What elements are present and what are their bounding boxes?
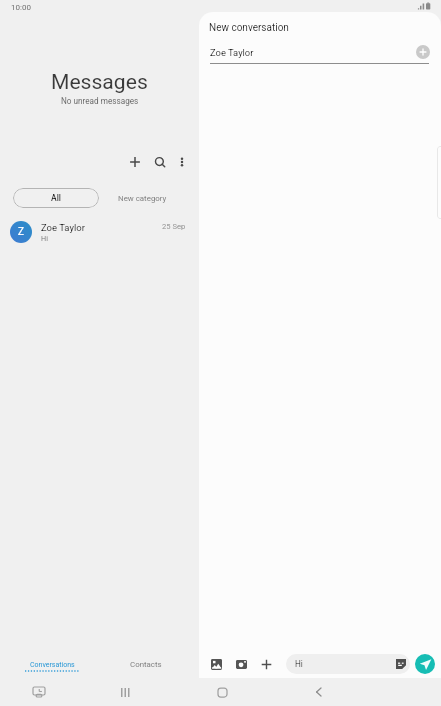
button[interactable]: More options [257, 655, 275, 673]
button[interactable]: More options [170, 150, 193, 173]
staticText: 25 Sep [162, 222, 186, 231]
staticText: 10:00 [11, 3, 31, 12]
button[interactable]: Send [415, 654, 435, 674]
button[interactable]: Hi [286, 654, 410, 674]
button[interactable]: Home [207, 678, 237, 706]
staticText: Hi [41, 234, 48, 242]
button[interactable]: Gallery [207, 655, 225, 673]
button[interactable]: New conversation [123, 150, 146, 173]
button[interactable]: Edge panel [437, 146, 441, 219]
staticText: New category [118, 194, 167, 203]
button[interactable]: Search [148, 150, 171, 173]
staticText: Hi [295, 659, 396, 669]
staticText: All [51, 193, 61, 203]
button[interactable]: All [13, 188, 99, 208]
button[interactable]: Z [0, 214, 199, 249]
staticText: Z [18, 226, 24, 238]
button[interactable]: Recent apps [110, 678, 140, 706]
button[interactable]: Conversations [12, 661, 93, 683]
button[interactable]: Back [303, 678, 333, 706]
button[interactable]: Add recipient [416, 45, 430, 59]
button[interactable]: New category [118, 188, 167, 208]
staticText: Conversations [30, 661, 75, 669]
button[interactable]: Camera [232, 655, 250, 673]
staticText: Messages [51, 69, 148, 94]
staticText: Zoe Taylor [41, 222, 85, 233]
staticText: No unread messages [61, 96, 139, 106]
staticText: Zoe Taylor [210, 47, 416, 58]
staticText: Contacts [130, 660, 162, 669]
button[interactable]: Contacts [111, 660, 180, 682]
staticText: New conversation [209, 22, 289, 34]
button[interactable]: Screenshot [24, 678, 54, 706]
